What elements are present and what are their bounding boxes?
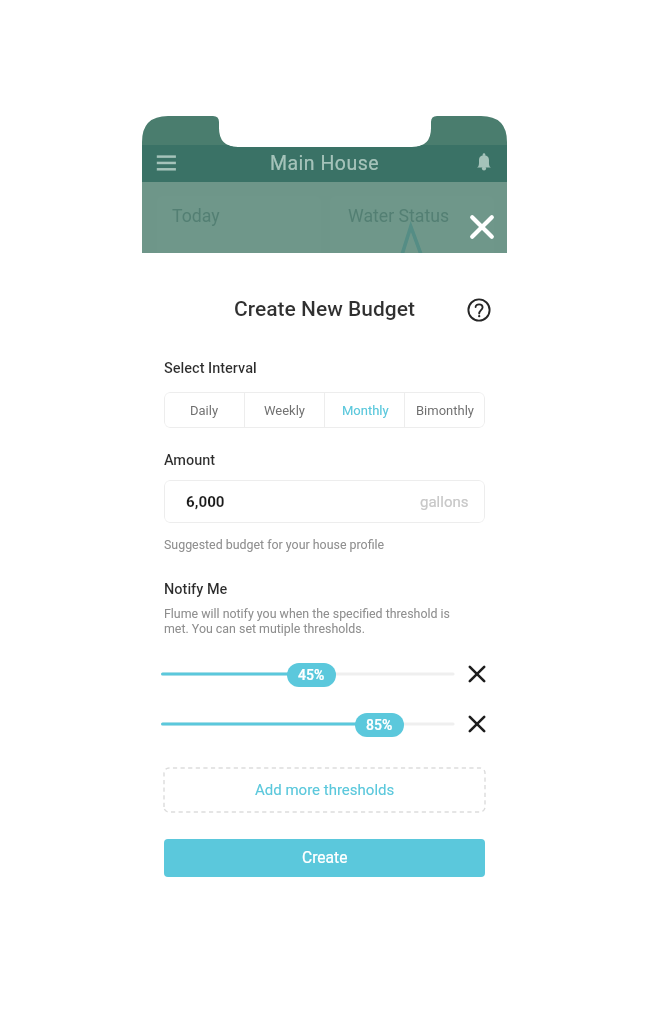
button[interactable]: Create (164, 839, 485, 877)
button[interactable]: Bimonthly (405, 392, 485, 428)
button[interactable]: Daily (164, 392, 245, 428)
button[interactable]: Menu (150, 149, 182, 181)
staticText: Create New Budget (234, 297, 416, 322)
button[interactable]: Close (464, 209, 500, 245)
staticText: 85% (366, 717, 393, 733)
button[interactable]: Remove threshold (463, 712, 491, 736)
staticText: Daily (190, 403, 219, 418)
staticText: gallons (420, 493, 469, 511)
button[interactable]: Add more thresholds (164, 768, 485, 812)
staticText: Suggested budget for your house profile (164, 537, 385, 552)
staticText: Notify Me (164, 581, 228, 598)
button[interactable]: Notifications (473, 152, 495, 174)
staticText: Create (302, 849, 348, 867)
button[interactable]: 6,000 (164, 480, 485, 523)
staticText: 6,000 (186, 493, 225, 511)
staticText: Weekly (264, 403, 306, 418)
button[interactable]: Help (462, 297, 496, 323)
button[interactable]: Weekly (245, 392, 325, 428)
button[interactable]: 45% (287, 663, 336, 687)
staticText: Flume will notify you when the specified… (164, 606, 450, 636)
staticText: Bimonthly (416, 403, 474, 418)
staticText: 45% (298, 667, 325, 683)
staticText: Add more thresholds (255, 781, 395, 799)
staticText: Water Status (348, 206, 450, 227)
staticText: Today (172, 206, 220, 227)
button[interactable]: 85% (355, 713, 404, 737)
button[interactable]: Monthly (325, 392, 405, 428)
staticText: Monthly (342, 403, 389, 418)
staticText: Select Interval (164, 360, 257, 377)
staticText: Main House (142, 152, 507, 175)
button[interactable]: Remove threshold (463, 662, 491, 686)
staticText: Amount (164, 452, 216, 469)
